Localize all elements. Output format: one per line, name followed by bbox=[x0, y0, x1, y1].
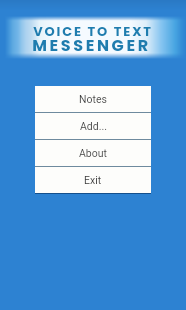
button[interactable]: Exit bbox=[35, 167, 151, 193]
staticText: Exit bbox=[84, 174, 102, 186]
button[interactable]: Notes bbox=[35, 86, 151, 112]
button[interactable]: About bbox=[35, 140, 151, 166]
staticText: MESSENGER bbox=[32, 34, 151, 53]
staticText: VOICE TO TEXT bbox=[33, 22, 153, 38]
staticText: Notes bbox=[79, 93, 107, 105]
staticText: About bbox=[79, 147, 107, 159]
button[interactable]: Add... bbox=[35, 113, 151, 139]
staticText: Add... bbox=[80, 120, 107, 132]
